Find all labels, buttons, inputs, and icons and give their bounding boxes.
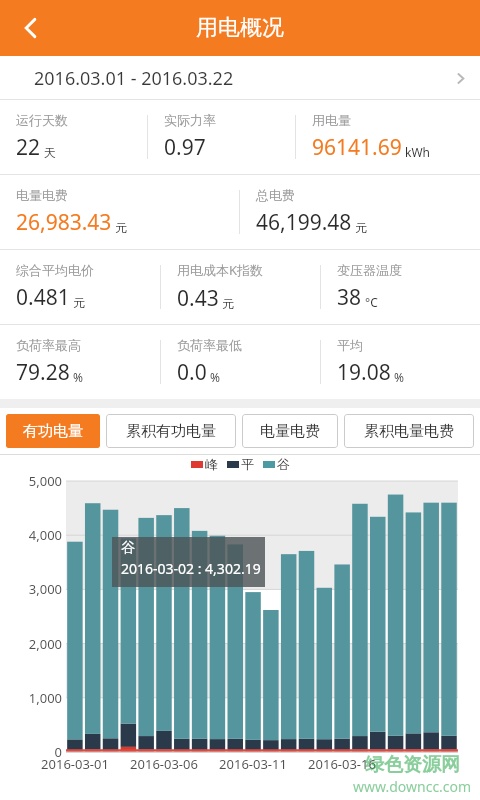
staticText: 2,000 — [6, 635, 62, 653]
staticText: % — [394, 369, 404, 385]
staticText: 元 — [355, 220, 367, 235]
staticText: 22 — [16, 133, 41, 162]
staticText: 平均 — [337, 337, 363, 353]
staticText: 0.43 — [177, 284, 219, 313]
staticText: 5,000 — [6, 472, 62, 490]
button[interactable]: 累积有功电量 — [106, 414, 236, 448]
staticText: 谷 — [121, 539, 135, 557]
staticText: 用电成本K指数 — [177, 261, 264, 279]
staticText: 绿色资源网 — [365, 753, 460, 777]
staticText: 实际力率 — [164, 112, 216, 128]
staticText: 综合平均电价 — [16, 262, 94, 278]
staticText: 负荷率最低 — [177, 337, 242, 353]
staticText: 2016-03-11 — [207, 755, 299, 773]
staticText: 38 — [337, 283, 362, 312]
staticText: 2016-03-06 — [118, 755, 210, 773]
staticText: 运行天数 — [16, 112, 68, 128]
staticText: 19.08 — [337, 358, 391, 387]
button[interactable]: 有功电量 — [6, 414, 100, 448]
staticText: 谷 — [277, 456, 290, 472]
staticText: 负荷率最高 — [16, 337, 81, 353]
staticText: % — [210, 369, 220, 385]
staticText: 变压器温度 — [337, 262, 402, 278]
button[interactable]: 电量电费 — [242, 414, 338, 448]
staticText: 累积有功电量 — [126, 422, 216, 441]
staticText: 2016-03-16 — [296, 755, 388, 773]
staticText: 电量电费 — [16, 187, 68, 203]
staticText: 天 — [44, 145, 56, 160]
staticText: www.downcc.com — [353, 777, 472, 796]
staticText: 总电费 — [256, 187, 295, 203]
staticText: % — [73, 369, 83, 385]
staticText: 累积电量电费 — [364, 422, 454, 441]
staticText: 2016-03-01 — [29, 755, 121, 773]
staticText: kWh — [405, 144, 430, 160]
staticText: 0.481 — [16, 283, 70, 312]
staticText: 79.28 — [16, 358, 70, 387]
staticText: 元 — [73, 295, 85, 310]
staticText: 0.0 — [177, 358, 207, 387]
staticText: 用电概况 — [196, 14, 284, 42]
button[interactable]: Back — [4, 1, 58, 55]
staticText: °C — [365, 294, 378, 310]
staticText: 平 — [241, 456, 254, 472]
staticText: 元 — [222, 296, 234, 311]
staticText: 4,000 — [6, 526, 62, 544]
staticText: 有功电量 — [23, 422, 83, 441]
other: Select date range — [450, 68, 470, 88]
staticText: 2016-03-02 : 4,302.19 — [121, 559, 261, 578]
staticText: 3,000 — [6, 580, 62, 598]
button[interactable]: 累积电量电费 — [344, 414, 474, 448]
staticText: 1,000 — [6, 689, 62, 707]
staticText: 0.97 — [164, 133, 206, 162]
staticText: 26,983.43 — [16, 208, 112, 237]
staticText: 峰 — [205, 456, 218, 472]
staticText: 电量电费 — [260, 422, 320, 441]
button[interactable]: 2016.03.01 - 2016.03.22 — [0, 56, 480, 100]
staticText: 46,199.48 — [256, 208, 352, 237]
staticText: 0 — [6, 743, 62, 761]
staticText: 元 — [115, 220, 127, 235]
staticText: 2016.03.01 - 2016.03.22 — [34, 66, 234, 91]
staticText: 用电量 — [312, 112, 351, 128]
staticText: 96141.69 — [312, 133, 402, 162]
